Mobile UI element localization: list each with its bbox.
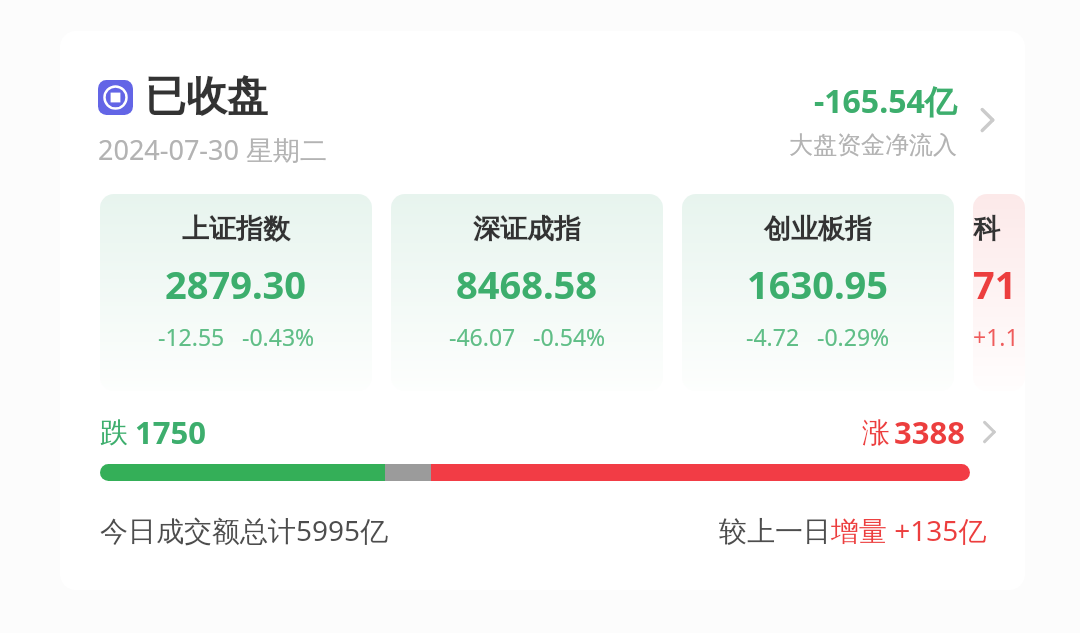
- staticText: 涨: [862, 415, 890, 450]
- staticText: 711.25: [973, 258, 1025, 310]
- staticText: -4.72: [746, 321, 800, 352]
- staticText: 创业板指: [764, 212, 872, 246]
- staticText: -12.55: [158, 321, 225, 352]
- button[interactable]: 科创50: [973, 194, 1025, 391]
- staticText: 今日成交额总计5995亿: [100, 511, 389, 549]
- staticText: -0.54%: [533, 321, 606, 352]
- staticText: 1630.95: [747, 258, 889, 310]
- staticText: -165.54亿: [814, 79, 957, 123]
- staticText: 8468.58: [456, 258, 598, 310]
- other: 查看大盘资金净流入详情: [969, 102, 1005, 138]
- staticText: -0.43%: [242, 321, 315, 352]
- button[interactable]: 上证指数: [100, 194, 372, 391]
- staticText: 较上一日增量 +135亿: [719, 511, 987, 549]
- other: 查看涨跌分布详情: [973, 416, 1005, 448]
- staticText: 1750: [135, 411, 206, 453]
- staticText: 上证指数: [182, 212, 290, 246]
- staticText: +1.18: [973, 321, 1025, 352]
- staticText: 2879.30: [165, 258, 307, 310]
- staticText: 2024-07-30 星期二: [98, 131, 327, 168]
- button[interactable]: 已收盘: [98, 71, 1005, 168]
- staticText: 深证成指: [473, 212, 581, 246]
- button[interactable]: 跌: [100, 411, 1005, 481]
- staticText: -0.29%: [817, 321, 890, 352]
- staticText: 科创50: [973, 212, 1025, 246]
- staticText: -46.07: [449, 321, 516, 352]
- button[interactable]: 深证成指: [391, 194, 663, 391]
- staticText: 大盘资金净流入: [789, 130, 957, 160]
- staticText: 3388: [894, 411, 965, 453]
- staticText: 跌: [100, 415, 128, 450]
- button[interactable]: 创业板指: [682, 194, 954, 391]
- staticText: 已收盘: [145, 71, 268, 123]
